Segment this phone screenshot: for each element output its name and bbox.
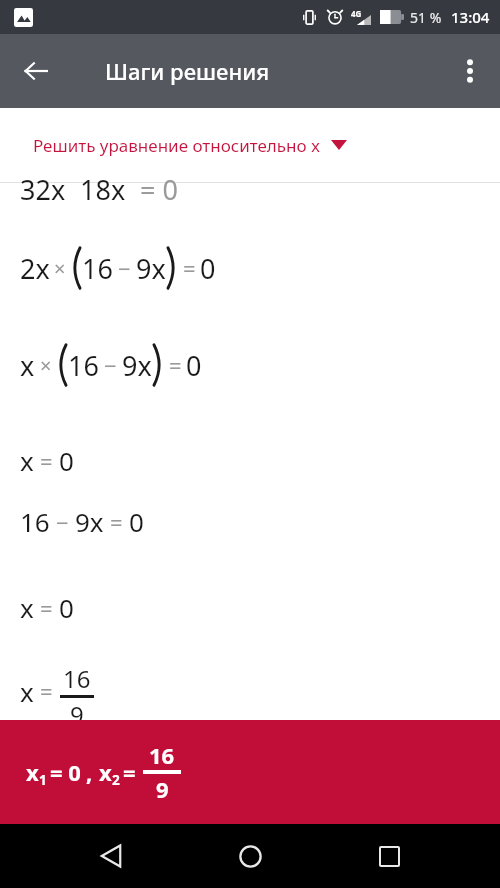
- staticText: =: [183, 253, 196, 283]
- staticText: 13:04: [451, 7, 490, 27]
- button[interactable]: x: [0, 720, 500, 824]
- staticText: 9x: [75, 504, 104, 539]
- staticText: −: [118, 253, 131, 283]
- staticText: −: [56, 507, 69, 537]
- staticText: 0: [59, 590, 74, 625]
- staticText: 51 %: [410, 8, 442, 27]
- staticText: ×: [40, 352, 52, 379]
- staticText: 16: [20, 504, 50, 539]
- button[interactable]: Recent apps: [361, 828, 417, 884]
- staticText: x: [20, 443, 34, 478]
- staticText: 16: [68, 347, 99, 384]
- staticText: x: [20, 590, 34, 625]
- button[interactable]: Home: [222, 828, 278, 884]
- staticText: 0: [200, 250, 216, 287]
- staticText: 16: [149, 740, 175, 770]
- staticText: = 0: [140, 171, 178, 208]
- button[interactable]: Решить уравнение относительно x: [0, 108, 500, 182]
- staticText: 9: [70, 698, 84, 720]
- staticText: −: [104, 350, 117, 380]
- button[interactable]: Back: [8, 43, 64, 99]
- staticText: =: [40, 593, 53, 623]
- staticText: 4G: [351, 8, 362, 19]
- staticText: =: [169, 350, 182, 380]
- staticText: 0: [59, 443, 74, 478]
- staticText: x: [20, 347, 35, 384]
- staticText: x: [20, 674, 34, 709]
- staticText: =: [123, 757, 136, 787]
- staticText: 9x: [136, 250, 166, 287]
- staticText: =: [40, 676, 53, 706]
- staticText: x: [26, 757, 39, 787]
- button[interactable]: More options: [444, 45, 496, 97]
- staticText: ×: [54, 255, 66, 282]
- staticText: 32x: [20, 171, 66, 208]
- staticText: 2: [112, 770, 120, 789]
- staticText: = 0: [50, 757, 81, 787]
- staticText: Шаги решения: [105, 56, 270, 86]
- staticText: 0: [186, 347, 202, 384]
- staticText: 0: [129, 504, 144, 539]
- staticText: ,: [86, 757, 93, 787]
- staticText: 18x: [80, 171, 126, 208]
- staticText: Решить уравнение относительно x: [33, 134, 321, 157]
- staticText: 2x: [20, 250, 50, 287]
- staticText: 16: [63, 662, 91, 695]
- staticText: =: [40, 446, 53, 476]
- button[interactable]: Back: [83, 828, 139, 884]
- staticText: 16: [82, 250, 113, 287]
- staticText: 9x: [122, 347, 152, 384]
- staticText: 1: [39, 770, 47, 789]
- staticText: 9: [156, 774, 169, 804]
- staticText: =: [110, 507, 123, 537]
- staticText: x: [99, 757, 112, 787]
